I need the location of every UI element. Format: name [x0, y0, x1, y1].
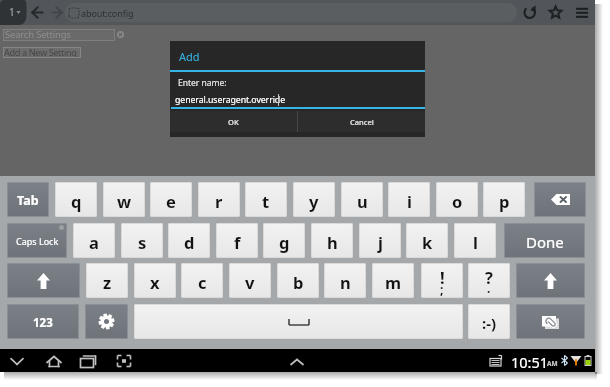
staticText: . — [487, 280, 491, 296]
button[interactable]: u — [341, 182, 383, 217]
button[interactable]: m — [372, 263, 414, 298]
button[interactable]: Attach — [516, 304, 585, 339]
staticText: g — [279, 231, 290, 253]
button[interactable]: q — [55, 182, 97, 217]
button[interactable]: 123 — [7, 304, 79, 339]
button[interactable]: w — [103, 182, 145, 217]
staticText: m — [385, 271, 402, 293]
button[interactable]: Clear search — [117, 31, 124, 38]
staticText: h — [327, 231, 338, 253]
button[interactable]: Tab — [7, 182, 49, 217]
staticText: 10:51 — [511, 352, 549, 372]
button[interactable]: e — [150, 182, 192, 217]
button[interactable]: Back — [28, 3, 48, 22]
button[interactable]: s — [121, 223, 163, 258]
button[interactable]: z — [86, 263, 128, 298]
staticText: y — [309, 190, 319, 212]
staticText: j — [378, 231, 383, 253]
button[interactable]: Backspace — [534, 182, 586, 217]
button[interactable]: OK — [170, 111, 297, 132]
button[interactable]: Cancel — [298, 111, 425, 132]
button[interactable]: Tabs — [0, 0, 30, 25]
staticText: s — [138, 231, 147, 253]
staticText: Enter name: — [178, 77, 227, 89]
button[interactable]: j — [359, 223, 401, 258]
staticText: t — [262, 190, 270, 212]
button[interactable]: a — [73, 223, 115, 258]
staticText: AM — [547, 359, 558, 368]
staticText: OK — [228, 117, 239, 127]
staticText: Tab — [17, 192, 39, 209]
button[interactable]: Shift — [516, 263, 585, 298]
button[interactable]: l — [454, 223, 496, 258]
staticText: r — [215, 190, 223, 212]
staticText: ! — [440, 266, 445, 288]
button[interactable]: o — [436, 182, 478, 217]
button[interactable]: i — [388, 182, 430, 217]
staticText: a — [89, 231, 99, 253]
button[interactable]: Reload — [522, 3, 540, 21]
staticText: ? — [485, 266, 493, 288]
button[interactable]: y — [293, 182, 335, 217]
staticText: n — [340, 271, 351, 293]
staticText: d — [184, 231, 195, 253]
button[interactable]: Forward — [47, 3, 67, 22]
button[interactable]: Search Settings — [3, 29, 115, 41]
staticText: k — [422, 231, 433, 253]
staticText: c — [198, 271, 207, 293]
button[interactable]: v — [229, 263, 271, 298]
staticText: b — [293, 271, 304, 293]
staticText: 1 — [9, 5, 15, 19]
button[interactable]: Screenshot — [116, 353, 132, 369]
staticText: Cancel — [350, 117, 374, 127]
staticText: o — [452, 190, 463, 212]
button[interactable]: Home — [45, 352, 63, 370]
button[interactable]: Back — [8, 352, 26, 370]
button[interactable]: Menu — [574, 3, 592, 21]
staticText: x — [150, 271, 160, 293]
button[interactable]: k — [406, 223, 448, 258]
staticText: general.useragent.override — [175, 94, 286, 106]
button[interactable]: x — [134, 263, 176, 298]
staticText: q — [71, 190, 82, 212]
button[interactable]: g — [263, 223, 305, 258]
staticText: :-) — [482, 313, 497, 333]
staticText: v — [245, 271, 255, 293]
button[interactable]: f — [216, 223, 258, 258]
button[interactable]: ! — [421, 263, 463, 298]
staticText: e — [166, 190, 176, 212]
staticText: z — [103, 271, 112, 293]
staticText: Search Settings — [5, 28, 71, 40]
button[interactable]: about:config — [65, 3, 517, 22]
button[interactable]: Expand status bar — [288, 352, 306, 370]
button[interactable]: Add a New Setting — [3, 47, 81, 58]
button[interactable]: d — [168, 223, 210, 258]
staticText: u — [357, 190, 368, 212]
staticText: p — [499, 190, 510, 212]
button[interactable]: Done — [504, 223, 585, 258]
button[interactable]: r — [198, 182, 240, 217]
staticText: Done — [526, 232, 564, 252]
button[interactable]: h — [311, 223, 353, 258]
button[interactable]: ? — [468, 263, 510, 298]
staticText: i — [407, 190, 412, 212]
staticText: l — [473, 231, 478, 253]
button[interactable]: p — [483, 182, 525, 217]
button[interactable]: b — [277, 263, 319, 298]
button[interactable]: Caps Lock — [7, 223, 67, 258]
button[interactable]: :-) — [468, 304, 510, 339]
staticText: Caps Lock — [16, 235, 59, 247]
button[interactable]: Bookmark — [547, 3, 565, 21]
staticText: Add — [179, 49, 200, 64]
button[interactable]: Keyboard settings — [85, 304, 128, 339]
staticText: w — [117, 190, 132, 212]
button[interactable]: t — [245, 182, 287, 217]
button[interactable]: Shift — [7, 263, 80, 298]
staticText: f — [234, 231, 241, 253]
staticText: Add a New Setting — [4, 46, 77, 57]
button[interactable]: Recent apps — [79, 352, 97, 370]
button[interactable]: c — [181, 263, 223, 298]
button[interactable]: n — [324, 263, 366, 298]
button[interactable]: Space — [134, 304, 463, 339]
staticText: 123 — [33, 315, 53, 331]
